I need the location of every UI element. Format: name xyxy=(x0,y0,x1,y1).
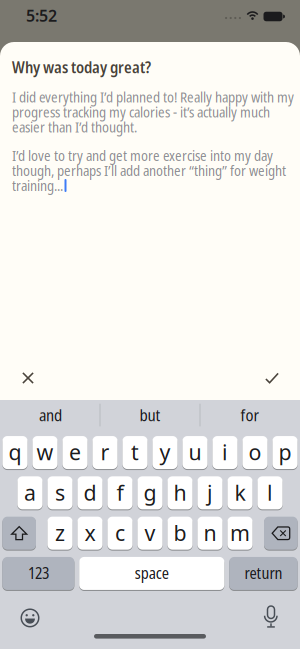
button[interactable]: b xyxy=(167,516,193,550)
staticText: q xyxy=(8,438,21,466)
staticText: I’d love to try and get more exercise in… xyxy=(12,146,273,165)
button[interactable]: q xyxy=(2,436,28,470)
staticText: l xyxy=(267,478,273,506)
staticText: Why was today great? xyxy=(12,56,151,78)
staticText: I did everything I’d planned to! Really … xyxy=(12,87,294,107)
button[interactable]: m xyxy=(227,516,253,550)
staticText: t xyxy=(131,438,139,466)
button[interactable]: s xyxy=(47,476,73,510)
button[interactable]: Delete xyxy=(264,516,298,550)
staticText: c xyxy=(115,518,125,547)
button[interactable]: r xyxy=(92,436,118,470)
button[interactable]: z xyxy=(47,516,73,550)
staticText: i xyxy=(222,438,228,466)
staticText: a xyxy=(24,478,36,506)
button[interactable]: Numbers xyxy=(2,556,74,590)
staticText: b xyxy=(173,518,186,547)
button[interactable]: Dictation xyxy=(263,605,300,627)
staticText: space xyxy=(135,562,169,584)
staticText: easier than I’d thought. xyxy=(12,117,137,137)
staticText: d xyxy=(83,478,96,506)
button[interactable]: v xyxy=(137,516,163,550)
staticText: w xyxy=(36,438,53,466)
staticText: though, perhaps I’ll add another “thing”… xyxy=(12,161,286,180)
button[interactable]: p xyxy=(272,436,298,470)
button[interactable]: u xyxy=(182,436,208,470)
button[interactable]: n xyxy=(197,516,223,550)
staticText: z xyxy=(55,518,65,547)
staticText: training... xyxy=(12,176,63,195)
button[interactable]: Space xyxy=(79,556,224,590)
button[interactable]: and xyxy=(1,399,100,436)
button[interactable]: k xyxy=(227,476,253,510)
button[interactable]: i xyxy=(212,436,238,470)
staticText: r xyxy=(100,438,109,466)
button[interactable]: c xyxy=(107,516,133,550)
staticText: u xyxy=(188,438,201,466)
button[interactable]: w xyxy=(32,436,58,470)
staticText: s xyxy=(55,478,65,506)
button[interactable]: h xyxy=(167,476,193,510)
button[interactable]: g xyxy=(137,476,163,510)
staticText: h xyxy=(173,478,186,506)
staticText: v xyxy=(144,518,155,547)
button[interactable]: j xyxy=(197,476,223,510)
staticText: k xyxy=(234,478,245,506)
staticText: y xyxy=(159,438,170,466)
button[interactable]: o xyxy=(242,436,268,470)
staticText: o xyxy=(248,438,261,466)
staticText: but xyxy=(139,404,160,426)
staticText: j xyxy=(207,478,213,506)
button[interactable]: l xyxy=(257,476,283,510)
staticText: x xyxy=(84,518,95,547)
button[interactable]: Cancel xyxy=(10,360,46,396)
staticText: progress tracking my calories - it’s act… xyxy=(12,102,270,122)
staticText: return xyxy=(244,562,282,584)
staticText: e xyxy=(69,438,81,466)
staticText: f xyxy=(116,478,123,506)
button[interactable]: a xyxy=(17,476,43,510)
button[interactable]: d xyxy=(77,476,103,510)
staticText: g xyxy=(143,478,156,506)
button[interactable]: Return xyxy=(229,556,298,590)
button[interactable]: but xyxy=(100,399,200,436)
staticText: n xyxy=(203,518,216,547)
button[interactable]: Emoji xyxy=(0,606,40,626)
staticText: p xyxy=(278,438,291,466)
staticText: 5:52 xyxy=(26,5,57,26)
button[interactable]: t xyxy=(122,436,148,470)
button[interactable]: e xyxy=(62,436,88,470)
button[interactable]: Save xyxy=(253,360,291,395)
staticText: and xyxy=(39,404,62,426)
staticText: for xyxy=(240,404,258,426)
button[interactable]: Shift xyxy=(2,516,36,550)
button[interactable]: f xyxy=(107,476,133,510)
button[interactable]: y xyxy=(152,436,178,470)
button[interactable]: for xyxy=(200,399,299,436)
button[interactable]: x xyxy=(77,516,103,550)
staticText: m xyxy=(230,518,250,547)
staticText: 123 xyxy=(28,562,49,584)
